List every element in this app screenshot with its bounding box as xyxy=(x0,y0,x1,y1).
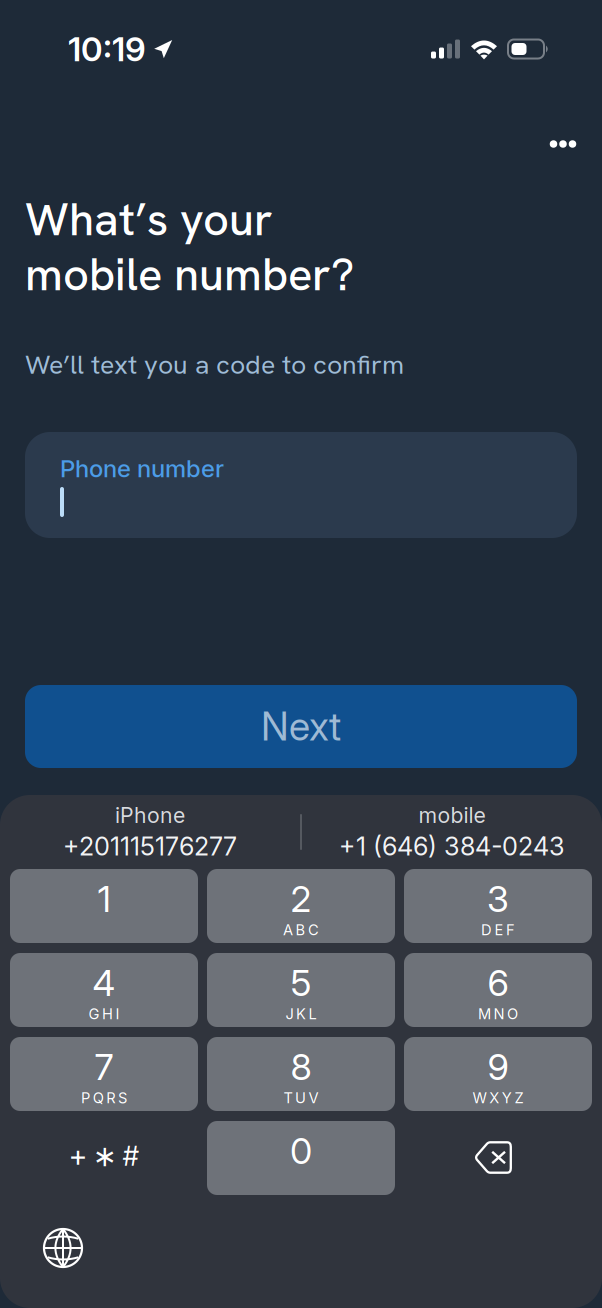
button[interactable]: 7 xyxy=(10,1037,198,1111)
staticText: WXYZ xyxy=(473,1089,523,1107)
staticText: What’s your xyxy=(25,190,273,249)
staticText: # xyxy=(122,1140,139,1172)
staticText: 10:19 xyxy=(68,29,146,69)
staticText: We’ll text you a code to confirm xyxy=(25,347,404,382)
button[interactable]: 6 xyxy=(404,953,592,1027)
button[interactable]: Next keyboard xyxy=(43,1228,83,1268)
button[interactable]: Delete xyxy=(404,1121,592,1195)
button[interactable]: 8 xyxy=(207,1037,395,1111)
staticText: GHI xyxy=(88,1005,120,1023)
staticText: +201115176277 xyxy=(63,831,237,862)
staticText: iPhone xyxy=(115,802,185,828)
button[interactable]: 9 xyxy=(404,1037,592,1111)
staticText: 6 xyxy=(487,961,508,1005)
button[interactable]: 4 xyxy=(10,953,198,1027)
button[interactable]: 3 xyxy=(404,869,592,943)
button[interactable]: 5 xyxy=(207,953,395,1027)
staticText: + xyxy=(68,1138,87,1174)
staticText: 1 xyxy=(97,877,110,921)
button[interactable]: Plus, star, pound xyxy=(10,1121,198,1195)
staticText: Phone number xyxy=(60,454,224,483)
staticText: 2 xyxy=(290,877,311,921)
staticText: mobile xyxy=(418,802,485,828)
staticText: 5 xyxy=(290,961,311,1005)
button[interactable]: 2 xyxy=(207,869,395,943)
button[interactable]: mobile xyxy=(302,802,602,862)
button[interactable]: 0 xyxy=(207,1121,395,1195)
staticText: 0 xyxy=(290,1129,312,1173)
staticText: ABC xyxy=(283,921,319,939)
staticText: mobile number? xyxy=(25,245,354,304)
button[interactable]: Next xyxy=(25,685,577,768)
staticText: ∗ xyxy=(92,1139,117,1173)
staticText: DEF xyxy=(481,921,515,939)
staticText: 7 xyxy=(94,1045,113,1089)
staticText: Next xyxy=(261,703,341,750)
staticText: +1 (646) 384-0243 xyxy=(339,831,565,862)
staticText: 9 xyxy=(487,1045,508,1089)
staticText: PQRS xyxy=(81,1089,127,1107)
staticText: 4 xyxy=(92,961,115,1005)
staticText: 8 xyxy=(290,1045,311,1089)
button[interactable]: 1 xyxy=(10,869,198,943)
staticText: 3 xyxy=(487,877,509,921)
staticText: TUV xyxy=(283,1089,319,1107)
staticText: JKL xyxy=(285,1005,317,1023)
staticText: MNO xyxy=(478,1005,518,1023)
button[interactable]: iPhone xyxy=(0,802,300,862)
button[interactable]: More options xyxy=(540,122,586,166)
